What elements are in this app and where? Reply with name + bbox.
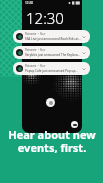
staticText: • Now bbox=[38, 64, 46, 68]
button[interactable]: Expand notification bbox=[81, 34, 87, 40]
button[interactable]: Flatsome bbox=[13, 62, 90, 75]
staticText: Hear about new events, first. bbox=[8, 127, 96, 155]
staticText: Verybles just announced The Keyboa… bbox=[25, 53, 81, 57]
staticText: • Now bbox=[38, 48, 46, 52]
button[interactable]: Camera bbox=[71, 121, 78, 128]
staticText: SSA Live just announced Book Kids at… bbox=[25, 37, 81, 41]
button[interactable]: Flatsome bbox=[13, 30, 90, 43]
button[interactable]: Expand notification bbox=[81, 50, 87, 56]
staticText: Flatsome bbox=[25, 48, 37, 52]
staticText: • Now bbox=[38, 32, 46, 36]
staticText: Sun, Dec 31 bbox=[26, 29, 45, 34]
button[interactable]: Unlock bbox=[46, 98, 55, 107]
staticText: Flatsome bbox=[25, 32, 37, 36]
button[interactable]: Expand notification bbox=[81, 66, 87, 72]
staticText: 12:30 bbox=[25, 1, 34, 5]
staticText: Popup Cafe just announced Pop up… bbox=[25, 69, 78, 73]
button[interactable]: Flatsome bbox=[13, 46, 90, 59]
staticText: 12:30 bbox=[26, 8, 64, 28]
staticText: Flatsome bbox=[25, 64, 37, 68]
